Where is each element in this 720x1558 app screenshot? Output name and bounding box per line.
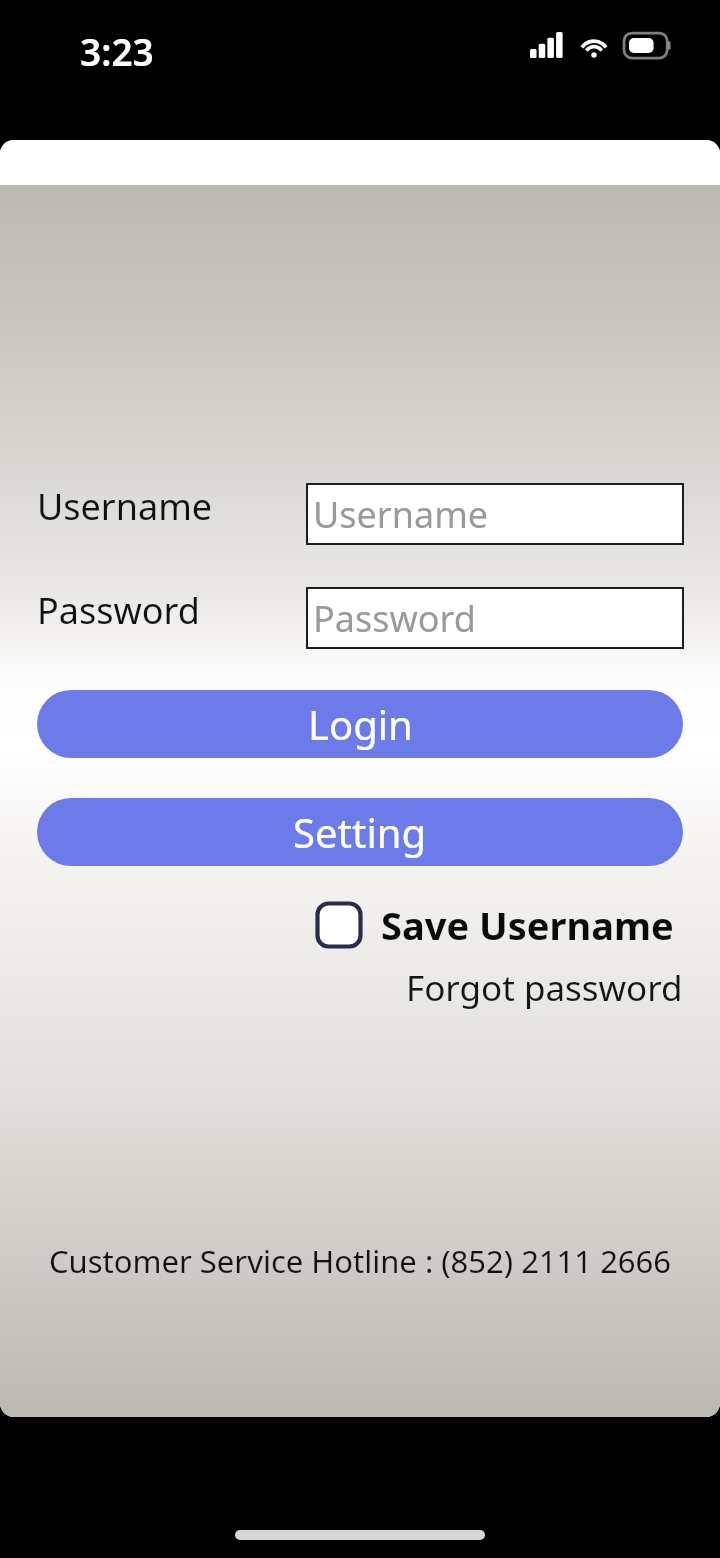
staticText: 3:23 <box>80 26 154 76</box>
staticText: Username <box>37 482 213 531</box>
button[interactable]: Login <box>37 690 683 758</box>
button[interactable]: Password <box>306 587 684 649</box>
staticText: Login <box>308 697 413 751</box>
button[interactable]: Setting <box>37 798 683 866</box>
staticText: Setting <box>293 805 427 859</box>
button[interactable]: Username <box>306 483 684 545</box>
button[interactable]: Customer Service Hotline : (852) 2111 26… <box>0 1240 720 1282</box>
staticText: Save Username <box>381 899 674 951</box>
staticText: Password <box>313 594 476 643</box>
button[interactable]: Save Username <box>313 897 676 953</box>
staticText: Forgot password <box>406 964 683 1012</box>
staticText: Username <box>313 490 489 539</box>
button[interactable]: Forgot password <box>0 964 720 1012</box>
staticText: Password <box>37 586 200 635</box>
